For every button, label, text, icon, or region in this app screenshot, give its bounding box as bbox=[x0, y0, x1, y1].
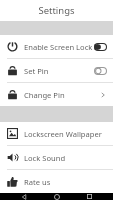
staticText: Enable Screen Lock bbox=[24, 42, 93, 52]
button[interactable]: Back bbox=[15, 193, 33, 200]
staticText: Lockscreen Wallpaper bbox=[24, 129, 102, 139]
button[interactable]: Home bbox=[48, 193, 66, 200]
button[interactable]: Rate us bbox=[0, 170, 113, 193]
button[interactable]: Toggle off bbox=[94, 67, 107, 75]
staticText: Set Pin bbox=[24, 66, 49, 76]
staticText: Change Pin bbox=[24, 90, 65, 100]
button[interactable]: Lockscreen Wallpaper bbox=[0, 122, 113, 145]
button[interactable]: Enable Screen Lock bbox=[0, 35, 113, 58]
other: Open bbox=[99, 91, 107, 99]
button[interactable]: Toggle on bbox=[94, 43, 107, 51]
staticText: Lock Sound bbox=[24, 153, 66, 163]
button[interactable]: Lock Sound bbox=[0, 146, 113, 169]
button[interactable]: Recent apps bbox=[80, 193, 98, 200]
button[interactable]: Set Pin bbox=[0, 59, 113, 82]
button[interactable]: Change Pin bbox=[0, 83, 113, 106]
staticText: Rate us bbox=[24, 177, 51, 187]
staticText: Settings bbox=[38, 4, 75, 17]
